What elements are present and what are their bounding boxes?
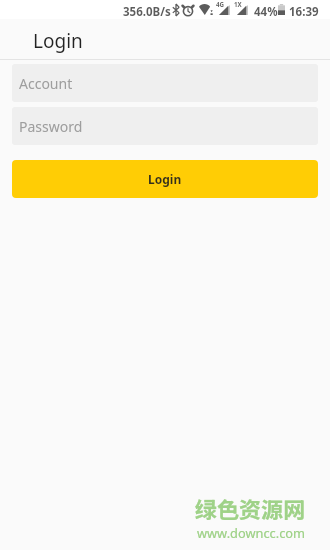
- staticText: 16:39: [289, 4, 319, 20]
- staticText: 4G: [216, 0, 225, 8]
- staticText: Account: [19, 74, 73, 93]
- staticText: 356.0B/s: [123, 4, 171, 20]
- staticText: Password: [19, 117, 83, 136]
- staticText: 绿色资源网: [195, 492, 306, 524]
- staticText: www.downcc.com: [197, 524, 305, 541]
- staticText: 1X: [234, 0, 242, 8]
- staticText: Login: [148, 171, 182, 187]
- button[interactable]: Password: [12, 107, 318, 145]
- button[interactable]: Account: [12, 64, 318, 102]
- button[interactable]: Login: [12, 160, 318, 198]
- staticText: 44%: [254, 4, 278, 20]
- staticText: Login: [33, 28, 83, 54]
